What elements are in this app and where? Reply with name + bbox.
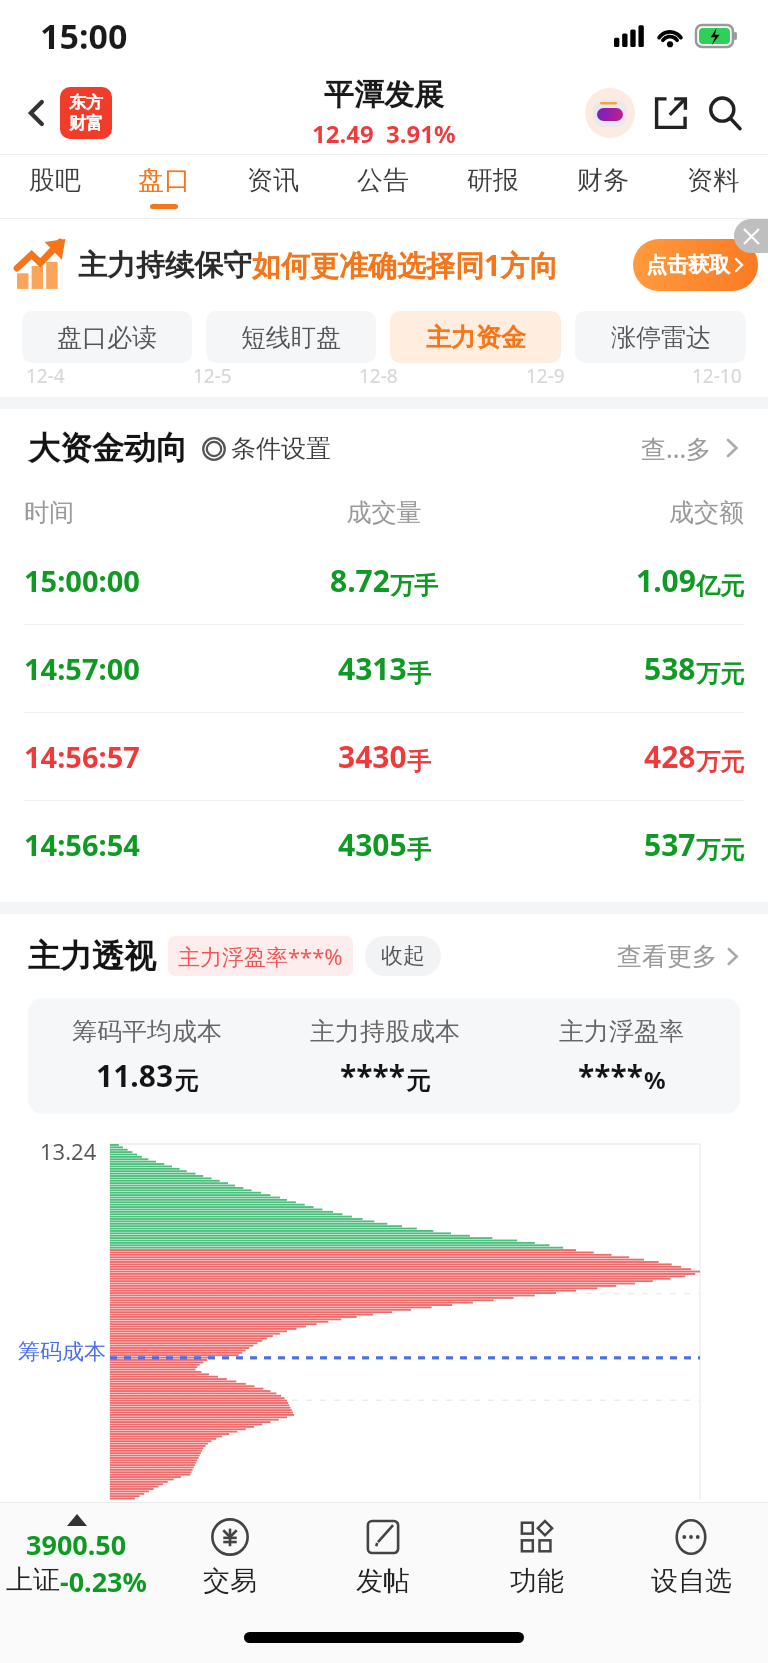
- staticText: 15:00:00: [24, 561, 264, 600]
- staticText: 亿元: [696, 571, 744, 601]
- staticText: 如何更准确选择同1方向: [252, 245, 559, 285]
- staticText: 收起: [381, 942, 425, 970]
- staticText: 资讯: [247, 164, 299, 197]
- button[interactable]: 查...多: [641, 431, 740, 465]
- staticText: 功能: [510, 1564, 564, 1598]
- staticText: 15:00: [40, 13, 128, 59]
- staticText: 14:57:00: [24, 649, 264, 688]
- staticText: 万元: [696, 835, 744, 865]
- button[interactable]: 盘口必读: [22, 311, 192, 363]
- button[interactable]: 收起: [365, 936, 441, 976]
- staticText: 财富: [69, 113, 103, 134]
- staticText: 财务: [577, 164, 629, 197]
- staticText: 大资金动向: [28, 428, 188, 468]
- button[interactable]: AI assistant: [582, 85, 638, 141]
- staticText: 条件设置: [231, 433, 331, 464]
- staticText: -0.23%: [60, 1563, 147, 1600]
- button[interactable]: Search: [698, 86, 752, 140]
- button[interactable]: 主力资金: [390, 311, 561, 363]
- button[interactable]: 设自选: [614, 1503, 768, 1611]
- button[interactable]: 查看更多: [617, 941, 740, 972]
- staticText: 主力持续保守: [78, 247, 252, 284]
- button[interactable]: 涨停雷达: [575, 311, 746, 363]
- staticText: 手: [407, 747, 431, 777]
- button[interactable]: 14:56:57: [24, 713, 744, 800]
- staticText: 主力持股成本: [310, 1016, 460, 1047]
- button[interactable]: 研报: [438, 155, 548, 218]
- staticText: 盘口必读: [57, 322, 157, 353]
- staticText: 428: [644, 736, 696, 777]
- staticText: 公告: [357, 164, 409, 197]
- staticText: ****: [578, 1055, 644, 1096]
- staticText: 发帖: [356, 1564, 410, 1598]
- staticText: 短线盯盘: [241, 322, 341, 353]
- staticText: 交易: [203, 1564, 257, 1598]
- button[interactable]: East Money home: [60, 87, 112, 139]
- staticText: 12-9: [526, 363, 565, 389]
- staticText: 资料: [687, 164, 739, 197]
- staticText: 3900.50: [26, 1526, 127, 1563]
- button[interactable]: 股吧: [0, 155, 109, 218]
- button[interactable]: Back: [14, 90, 60, 136]
- button[interactable]: 15:00:00: [24, 537, 744, 624]
- staticText: 盘口: [138, 164, 190, 197]
- staticText: 主力透视: [28, 936, 156, 976]
- button[interactable]: 盘口: [109, 155, 218, 218]
- staticText: 3430: [338, 736, 407, 777]
- button[interactable]: 14:56:54: [24, 801, 744, 888]
- staticText: 上证: [6, 1563, 60, 1597]
- staticText: 万元: [696, 747, 744, 777]
- button[interactable]: 14:57:00: [24, 625, 744, 712]
- staticText: 万手: [390, 571, 438, 601]
- button[interactable]: 交易: [153, 1503, 306, 1611]
- staticText: 14:56:57: [24, 737, 264, 776]
- button[interactable]: 财务: [548, 155, 658, 218]
- staticText: 13.24: [40, 1136, 97, 1166]
- staticText: 12-8: [359, 363, 398, 389]
- button[interactable]: 3900.50: [0, 1503, 153, 1611]
- button[interactable]: Close ad: [734, 219, 768, 253]
- button[interactable]: 功能: [460, 1503, 614, 1611]
- button[interactable]: 条件设置: [202, 433, 331, 464]
- staticText: 4313: [338, 648, 407, 689]
- staticText: 筹码平均成本: [72, 1016, 222, 1047]
- staticText: %: [644, 1063, 666, 1096]
- staticText: 股吧: [29, 164, 81, 197]
- staticText: 12.49: [312, 117, 374, 150]
- button[interactable]: 短线盯盘: [206, 311, 376, 363]
- button[interactable]: 点击获取: [633, 239, 758, 291]
- staticText: 12-4: [26, 363, 65, 389]
- staticText: 元: [174, 1066, 198, 1096]
- staticText: 11.83: [96, 1055, 174, 1096]
- staticText: 3.91%: [386, 117, 456, 150]
- staticText: 14:56:54: [24, 825, 264, 864]
- button[interactable]: 资料: [658, 155, 768, 218]
- staticText: 设自选: [651, 1564, 732, 1598]
- staticText: 12-5: [193, 363, 232, 389]
- staticText: 查看更多: [617, 941, 717, 972]
- staticText: 东方: [69, 92, 103, 113]
- button[interactable]: 公告: [328, 155, 438, 218]
- staticText: 主力资金: [426, 322, 526, 353]
- button[interactable]: 资讯: [218, 155, 328, 218]
- staticText: 主力浮盈率***%: [178, 941, 343, 971]
- staticText: 4305: [338, 824, 407, 865]
- staticText: 筹码成本: [18, 1338, 106, 1366]
- staticText: 平潭发展: [324, 76, 444, 114]
- staticText: 手: [407, 835, 431, 865]
- staticText: 成交额: [504, 497, 744, 528]
- staticText: 点击获取: [646, 252, 730, 278]
- button[interactable]: 发帖: [306, 1503, 460, 1611]
- staticText: 查...多: [641, 431, 712, 465]
- button[interactable]: Share: [644, 86, 698, 140]
- staticText: 元: [406, 1066, 430, 1096]
- staticText: 538: [644, 648, 696, 689]
- staticText: 万元: [696, 659, 744, 689]
- staticText: 成交量: [264, 497, 504, 528]
- staticText: 主力浮盈率: [559, 1016, 684, 1047]
- staticText: 12-10: [692, 363, 742, 389]
- staticText: 涨停雷达: [611, 322, 711, 353]
- staticText: 8.72: [330, 560, 390, 601]
- button[interactable]: 主力浮盈率***%: [168, 936, 353, 976]
- staticText: 1.09: [636, 560, 696, 601]
